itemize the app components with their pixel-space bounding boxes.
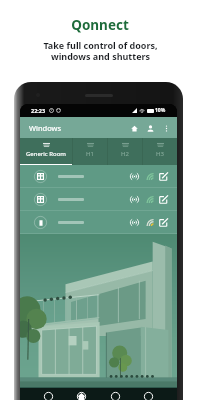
staticText: 22:23 bbox=[31, 107, 46, 114]
button[interactable]: More options bbox=[160, 122, 172, 134]
button[interactable]: Navigation item 3 bbox=[110, 391, 121, 400]
staticText: Generic Room bbox=[26, 150, 66, 158]
button[interactable]: H1 bbox=[72, 138, 107, 165]
button[interactable]: Signal bbox=[20, 211, 177, 233]
button[interactable]: Navigation item 1 bbox=[43, 391, 54, 400]
button[interactable]: Account bbox=[143, 121, 157, 135]
button[interactable]: Signal bbox=[20, 188, 177, 210]
button[interactable]: Home bbox=[127, 121, 141, 135]
staticText: Qonnect bbox=[71, 16, 129, 34]
button[interactable]: Signal bbox=[20, 165, 177, 187]
button[interactable]: Signal bbox=[128, 193, 141, 206]
staticText: H3 bbox=[156, 150, 164, 158]
staticText: H2 bbox=[121, 150, 129, 158]
button[interactable]: H2 bbox=[107, 138, 142, 165]
staticText: H1 bbox=[86, 150, 94, 158]
button[interactable]: Signal bbox=[128, 170, 141, 183]
button[interactable]: H3 bbox=[142, 138, 177, 165]
staticText: Windows bbox=[29, 123, 62, 133]
staticText: 10% bbox=[155, 107, 166, 114]
button[interactable]: Edit bbox=[157, 216, 170, 229]
button[interactable]: Edit bbox=[157, 170, 170, 183]
button[interactable]: Navigation item 4 bbox=[143, 391, 154, 400]
staticText: Take full control of doors, windows and … bbox=[43, 39, 158, 63]
button[interactable]: Generic Room bbox=[20, 138, 72, 165]
button[interactable]: Navigation item 2 bbox=[76, 391, 87, 400]
button[interactable]: Edit bbox=[157, 193, 170, 206]
button[interactable]: Signal bbox=[128, 216, 141, 229]
